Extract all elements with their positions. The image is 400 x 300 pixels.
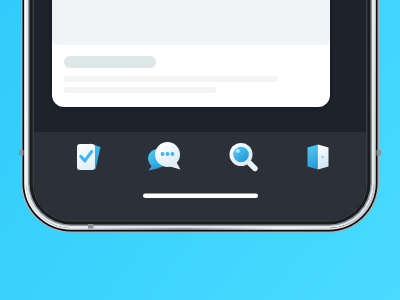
button[interactable]: Tasks (62, 134, 114, 180)
button[interactable]: Messages (139, 134, 191, 180)
button[interactable]: Library (292, 134, 344, 180)
button[interactable]: Search (217, 134, 269, 180)
